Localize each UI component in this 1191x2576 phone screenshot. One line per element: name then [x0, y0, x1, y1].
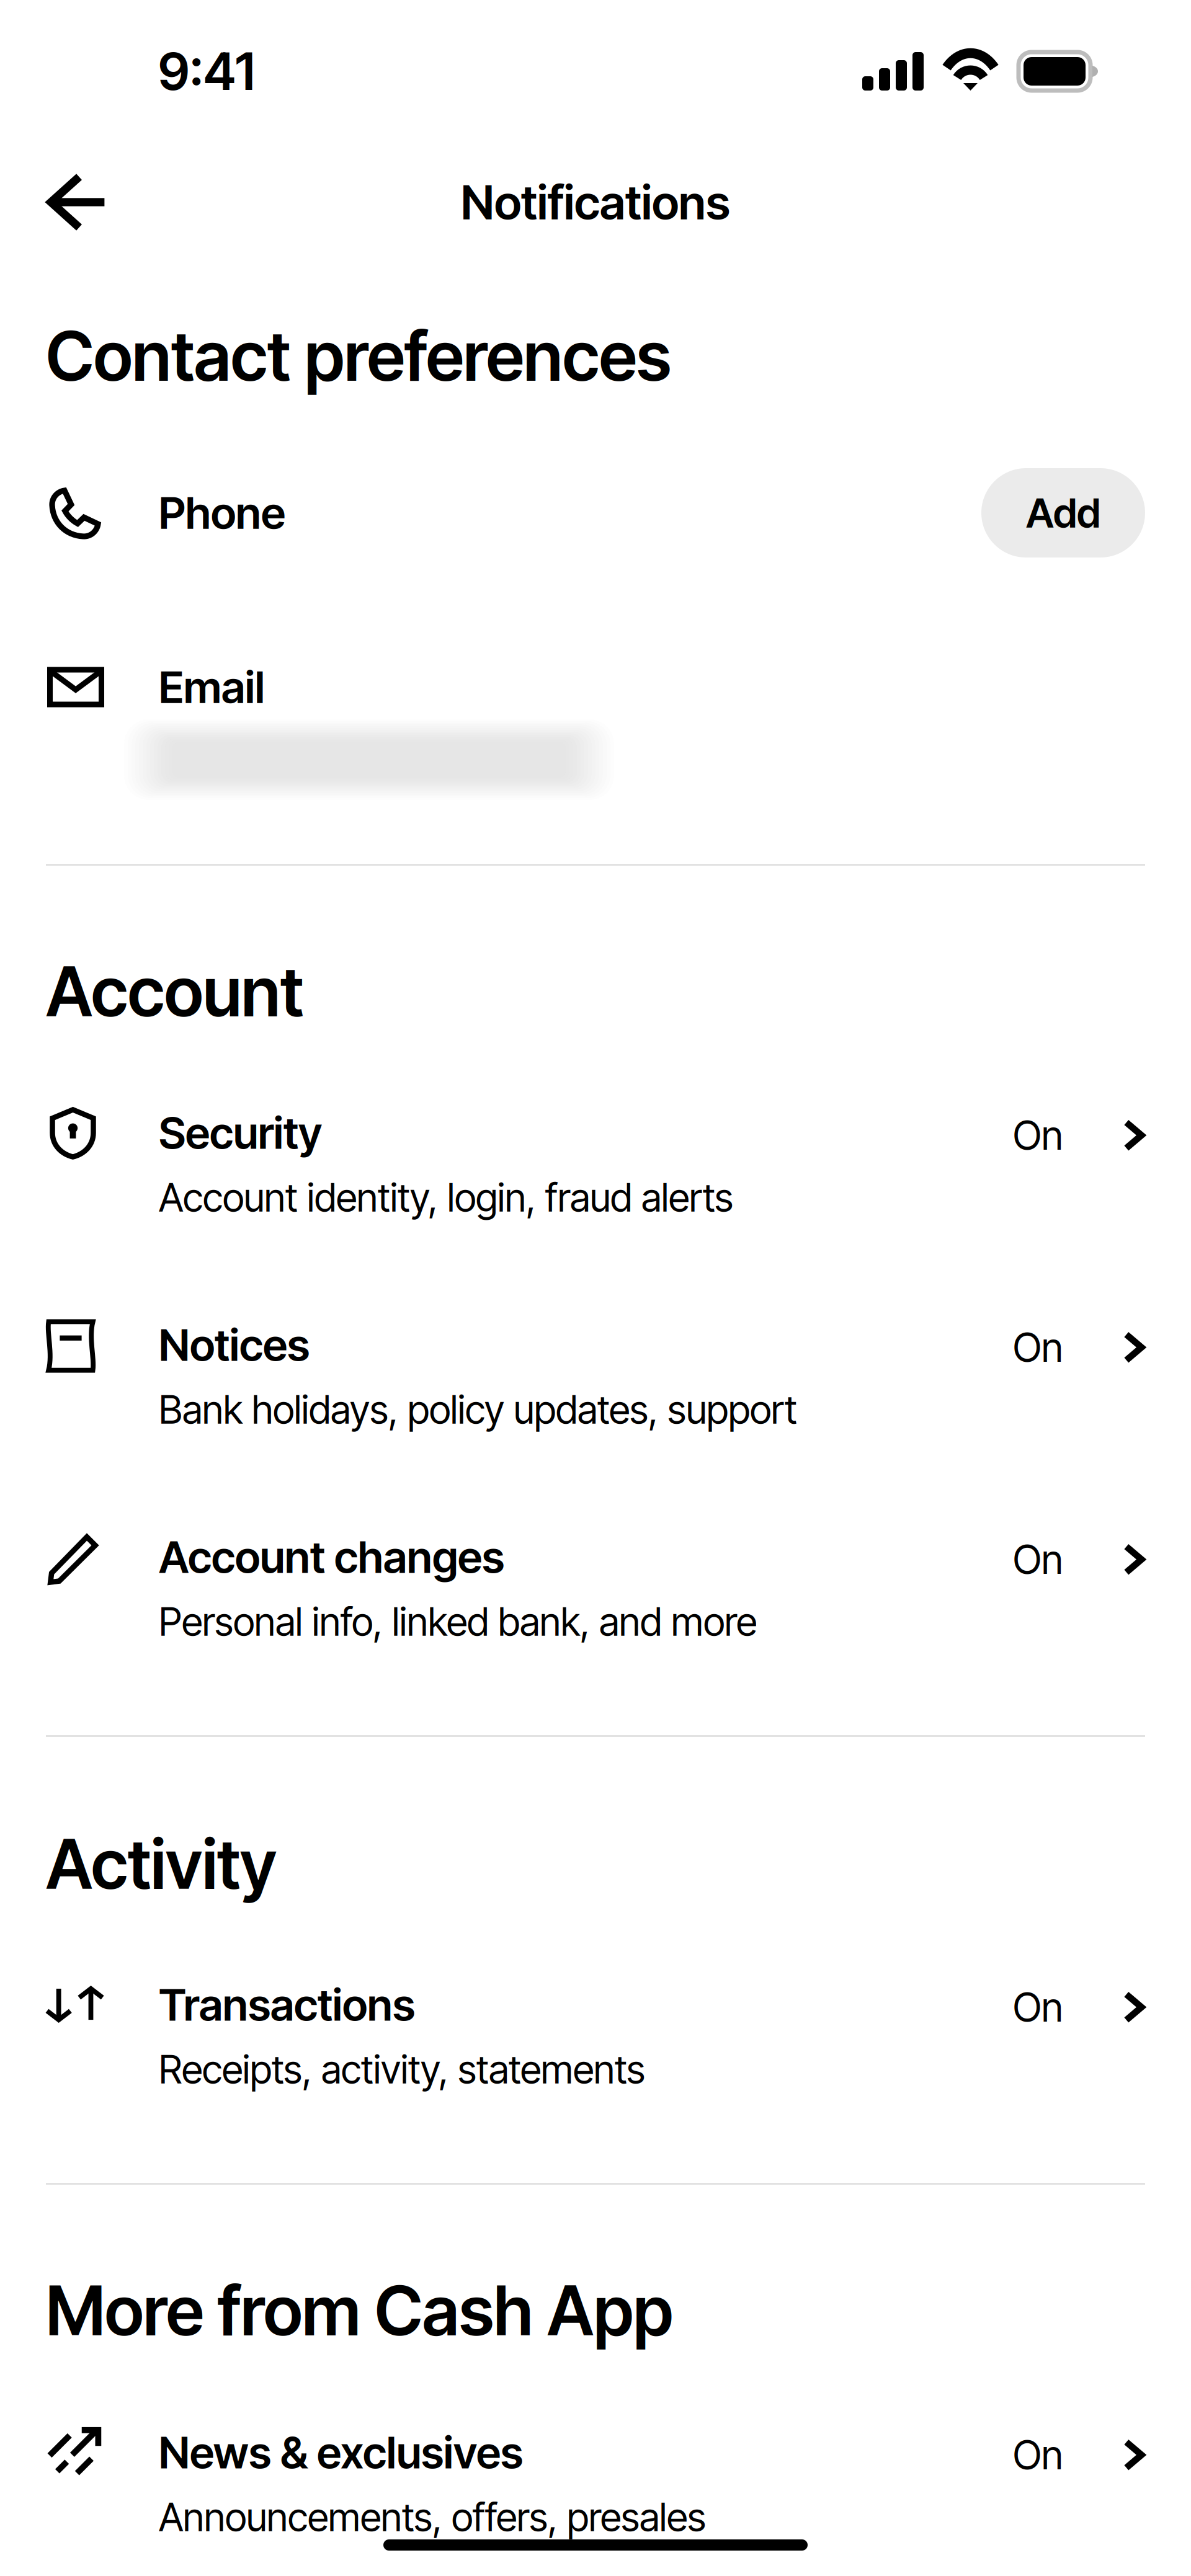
staticText: More from Cash App	[46, 2270, 673, 2352]
staticText: Notices	[159, 1318, 310, 1371]
staticText: Account changes	[159, 1530, 504, 1583]
staticText: Receipts, activity, statements	[159, 2046, 645, 2093]
staticText: News & exclusives	[159, 2426, 523, 2479]
button[interactable]: News & exclusives	[0, 2426, 1191, 2541]
staticText: Announcements, offers, presales	[159, 2494, 706, 2541]
staticText: Transactions	[159, 1978, 415, 2031]
staticText: Phone	[159, 486, 285, 539]
staticText: Contact preferences	[46, 315, 671, 397]
button[interactable]: Back	[0, 158, 133, 246]
staticText: Personal info, linked bank, and more	[159, 1598, 757, 1645]
staticText: Bank holidays, policy updates, support	[159, 1386, 797, 1433]
staticText: On	[1013, 1111, 1063, 1159]
staticText: Activity	[46, 1823, 277, 1905]
staticText: On	[1013, 2431, 1063, 2479]
staticText: On	[1013, 1323, 1063, 1371]
staticText: Email	[159, 661, 265, 714]
button[interactable]: Transactions	[0, 1978, 1191, 2093]
button[interactable]: Security	[0, 1106, 1191, 1221]
staticText: 9:41	[158, 40, 255, 102]
button[interactable]: Notices	[0, 1318, 1191, 1433]
staticText: Account	[46, 951, 303, 1033]
staticText: Account identity, login, fraud alerts	[159, 1174, 733, 1221]
button[interactable]: Add	[981, 468, 1145, 557]
staticText: On	[1013, 1983, 1063, 2031]
staticText: Notifications	[461, 174, 730, 231]
staticText: Add	[1026, 488, 1100, 537]
button[interactable]: Account changes	[0, 1530, 1191, 1645]
staticText: On	[1013, 1535, 1063, 1583]
staticText: Security	[159, 1106, 322, 1159]
